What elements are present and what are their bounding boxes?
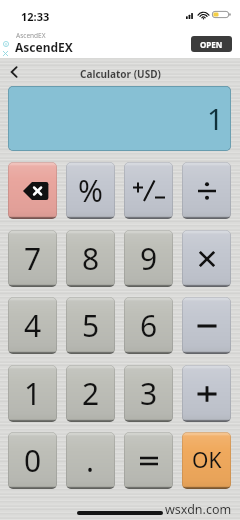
button[interactable]: 1 xyxy=(8,365,57,422)
staticText: 0 xyxy=(24,440,42,481)
button[interactable]: Multiply xyxy=(182,230,231,287)
button[interactable]: 4 xyxy=(8,297,57,354)
button[interactable]: Plus xyxy=(182,365,231,422)
button[interactable]: OPEN xyxy=(191,36,232,52)
button[interactable]: 3 xyxy=(124,365,173,422)
button[interactable]: Plus minus xyxy=(124,162,173,219)
staticText: 1 xyxy=(207,99,224,138)
staticText: OPEN xyxy=(200,39,223,50)
button[interactable]: 9 xyxy=(124,230,173,287)
staticText: Calculator (USD) xyxy=(80,67,161,81)
staticText: 12:33 xyxy=(21,9,50,24)
button[interactable]: 6 xyxy=(124,297,173,354)
staticText: . xyxy=(86,440,95,481)
button[interactable]: Back xyxy=(2,60,26,84)
staticText: 3 xyxy=(140,373,158,414)
button[interactable]: Backspace xyxy=(8,162,57,219)
staticText: 4 xyxy=(24,305,42,346)
button[interactable]: Divide xyxy=(182,162,231,219)
staticText: 8 xyxy=(82,238,100,279)
staticText: 1 xyxy=(24,373,42,414)
button[interactable]: 8 xyxy=(66,230,115,287)
staticText: 2 xyxy=(82,373,100,414)
button[interactable]: OK xyxy=(182,432,231,489)
staticText: 9 xyxy=(140,238,158,279)
staticText: AscendEX xyxy=(16,31,46,40)
staticText: 5 xyxy=(82,305,100,346)
staticText: 7 xyxy=(24,238,42,279)
button[interactable]: 2 xyxy=(66,365,115,422)
button[interactable]: Minus xyxy=(182,297,231,354)
staticText: wsxdn.com xyxy=(165,501,232,518)
staticText: OK xyxy=(192,446,222,475)
button[interactable]: 0 xyxy=(8,432,57,489)
button[interactable]: . xyxy=(66,432,115,489)
staticText: 6 xyxy=(140,305,158,346)
staticText: % xyxy=(78,170,103,211)
button[interactable]: % xyxy=(66,162,115,219)
staticText: AscendEX xyxy=(15,39,73,55)
button[interactable]: Equals xyxy=(124,432,173,489)
button[interactable]: 7 xyxy=(8,230,57,287)
button[interactable]: 5 xyxy=(66,297,115,354)
